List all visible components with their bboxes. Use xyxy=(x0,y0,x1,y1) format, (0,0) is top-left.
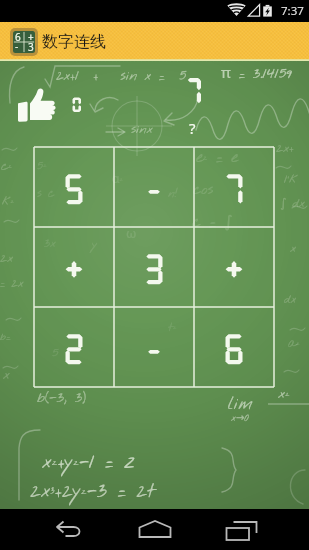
staticText: cos xyxy=(193,180,214,200)
staticText: π = 3.14159 xyxy=(221,62,293,84)
staticText: a² xyxy=(288,336,300,352)
staticText: 数字连线 xyxy=(42,32,106,52)
staticText: 7:37 xyxy=(281,3,304,19)
staticText: 6 xyxy=(15,31,21,44)
staticText: - xyxy=(15,39,19,53)
staticText: 1’k xyxy=(284,172,298,188)
button[interactable]: App icon xyxy=(13,31,35,53)
staticText: = 2x xyxy=(0,276,24,292)
staticText: t² xyxy=(168,320,177,336)
staticText: + xyxy=(28,31,34,44)
staticText: x xyxy=(290,240,297,257)
staticText: e² = e xyxy=(196,147,238,168)
staticText: y xyxy=(92,236,98,253)
staticText: ∫ dx xyxy=(280,196,305,212)
staticText: 2x³+2y²-3 = 2t xyxy=(30,478,156,505)
staticText: 2x+ xyxy=(276,140,294,157)
staticText: b(-3, 3) xyxy=(37,388,86,408)
staticText: n! xyxy=(168,186,178,202)
staticText: x xyxy=(3,366,10,385)
staticText: b= xyxy=(0,330,11,345)
staticText: lim xyxy=(228,392,253,416)
button[interactable]: Home xyxy=(111,509,198,550)
button[interactable]: Recent apps xyxy=(198,509,309,550)
staticText: 5 xyxy=(52,344,59,361)
staticText: ω xyxy=(126,224,137,242)
staticText: 2x xyxy=(0,250,14,267)
staticText: 3x xyxy=(44,236,56,252)
staticText: sinx xyxy=(131,121,153,138)
staticText: k² xyxy=(2,194,15,210)
staticText: x→0 xyxy=(231,412,250,425)
staticText: 5² xyxy=(37,158,47,174)
staticText: dx xyxy=(284,292,297,308)
staticText: c² xyxy=(1,158,13,175)
staticText: x² xyxy=(278,384,290,404)
staticText: 3 xyxy=(28,40,34,53)
staticText: 2x+1 + sin x = 5 xyxy=(56,67,187,86)
staticText: x²+y²-1 = z xyxy=(42,449,135,476)
staticText: α² xyxy=(112,170,124,188)
button[interactable]: Back xyxy=(0,509,111,550)
staticText: c = ∫ xyxy=(192,212,233,233)
staticText: ? xyxy=(189,118,196,138)
staticText: s c xyxy=(37,186,55,202)
